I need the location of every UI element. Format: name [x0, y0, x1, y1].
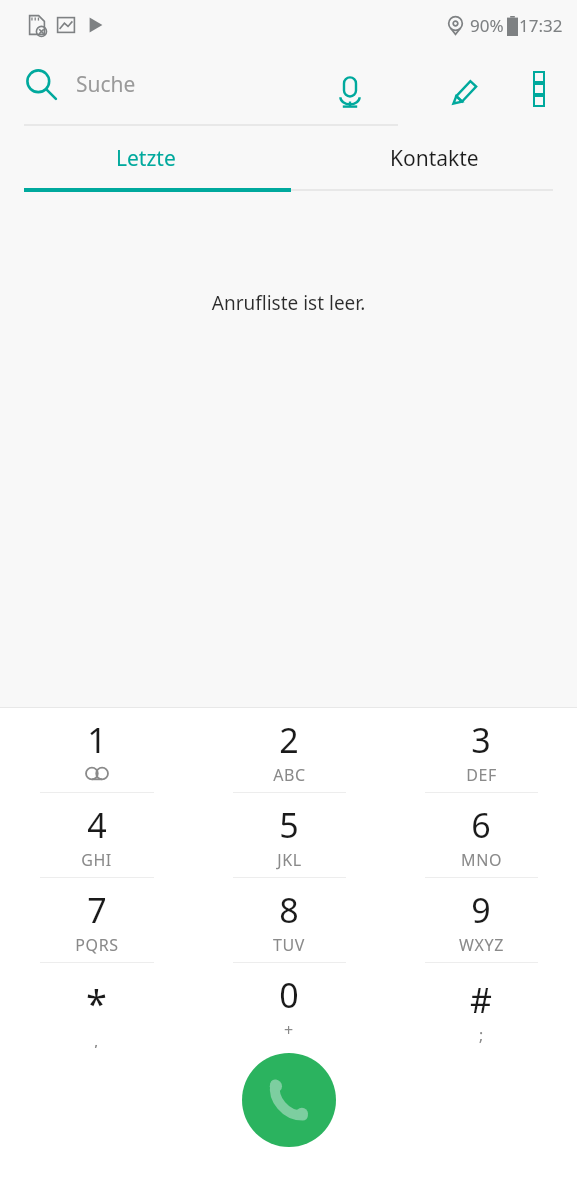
staticText: 2 — [279, 717, 299, 763]
staticText: 4 — [87, 802, 107, 848]
button[interactable]: 7 — [0, 878, 193, 963]
staticText: MNO — [461, 849, 502, 871]
button[interactable]: 3 — [385, 708, 577, 793]
button[interactable]: # — [385, 963, 577, 1048]
button[interactable]: 6 — [385, 793, 577, 878]
staticText: ABC — [273, 764, 306, 786]
button[interactable]: Kontakte — [291, 128, 577, 188]
staticText: ; — [479, 1024, 484, 1046]
button[interactable]: 9 — [385, 878, 577, 963]
button[interactable]: Voice search — [318, 60, 382, 124]
staticText: GHI — [81, 849, 112, 871]
button[interactable]: 8 — [193, 878, 385, 963]
button[interactable]: Call — [242, 1053, 336, 1147]
button[interactable]: 2 — [193, 708, 385, 793]
staticText: Kontakte — [390, 144, 479, 173]
button[interactable]: More options — [510, 60, 568, 118]
staticText: Letzte — [116, 144, 176, 173]
staticText: TUV — [273, 934, 305, 956]
staticText: , — [94, 1030, 99, 1048]
staticText: + — [284, 1019, 294, 1041]
staticText: * — [86, 977, 107, 1029]
staticText: 17:32 — [519, 14, 563, 37]
staticText: 8 — [279, 887, 299, 933]
staticText: 9 — [471, 887, 491, 933]
staticText: 6 — [471, 802, 491, 848]
button[interactable]: 1 — [0, 708, 193, 793]
staticText: 1 — [87, 717, 107, 763]
button[interactable]: 4 — [0, 793, 193, 878]
button[interactable]: * — [0, 963, 193, 1048]
staticText: 3 — [471, 717, 491, 763]
staticText: 5 — [279, 802, 299, 848]
staticText: 90% — [470, 14, 504, 37]
staticText: 0 — [279, 972, 299, 1018]
staticText: Suche — [76, 70, 136, 99]
button[interactable]: 0 — [193, 963, 385, 1048]
staticText: # — [470, 977, 492, 1023]
button[interactable]: Suche — [24, 50, 398, 118]
button[interactable]: Letzte — [0, 128, 291, 188]
staticText: DEF — [466, 764, 497, 786]
button[interactable]: 5 — [193, 793, 385, 878]
staticText: 7 — [87, 887, 107, 933]
button[interactable]: Compose — [432, 60, 496, 124]
staticText: WXYZ — [459, 934, 504, 956]
staticText: Anrufliste ist leer. — [0, 290, 577, 316]
staticText: JKL — [277, 849, 302, 871]
staticText: PQRS — [75, 934, 119, 956]
